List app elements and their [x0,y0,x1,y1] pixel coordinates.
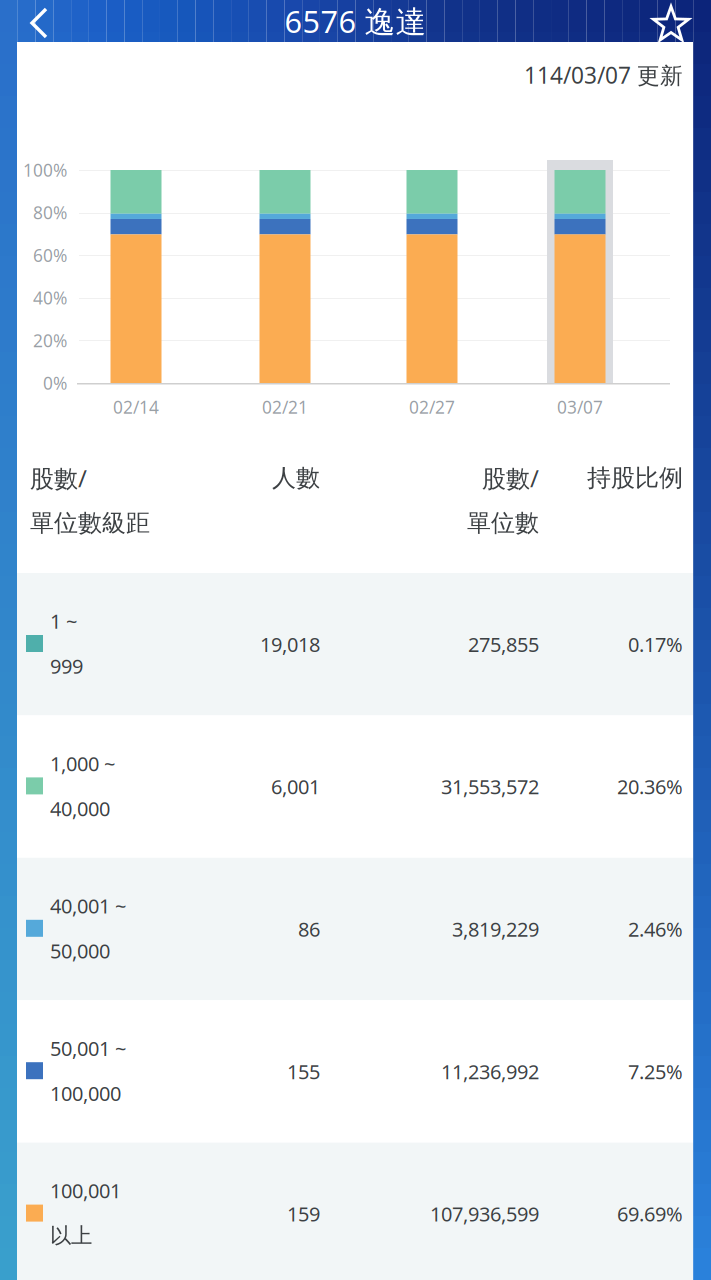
staticText: 19,018 [260,631,320,657]
staticText: 人數 [272,463,320,493]
staticText: 100,001 [50,1177,121,1204]
staticText: 02/27 [409,395,455,418]
staticText: 69.69% [617,1200,683,1227]
staticText: 40% [33,286,67,309]
staticText: 單位數級距 [30,508,150,538]
staticText: 2.46% [628,916,683,942]
button[interactable]: Add to watchlist [644,0,698,42]
staticText: 31,553,572 [441,773,539,800]
button[interactable]: 100,001 [17,1143,693,1280]
staticText: 20% [33,329,67,352]
staticText: 100,000 [50,1080,121,1106]
button[interactable]: Back [9,0,67,42]
staticText: 0% [43,371,67,394]
staticText: 11,236,992 [441,1058,539,1085]
staticText: 03/07 [557,395,603,418]
staticText: 40,000 [50,795,110,822]
staticText: 1 ~ [50,608,77,634]
staticText: 1,000 ~ [50,750,115,777]
staticText: 股數/ [482,462,539,494]
staticText: 單位數 [467,508,539,538]
button[interactable]: 1 ~ [17,573,693,715]
staticText: 6576 逸達 [284,1,426,41]
staticText: 100% [23,158,67,181]
button[interactable]: 50,001 ~ [17,1000,693,1143]
staticText: 50,001 ~ [50,1035,126,1061]
staticText: 40,001 ~ [50,892,126,919]
staticText: 3,819,229 [452,916,539,942]
staticText: 114/03/07 更新 [524,60,683,90]
staticText: 02/21 [262,395,308,418]
button[interactable]: 40,001 ~ [17,858,693,1000]
staticText: 155 [287,1058,320,1085]
staticText: 0.17% [628,631,683,657]
staticText: 60% [33,244,67,267]
staticText: 50,000 [50,937,110,964]
staticText: 持股比例 [587,463,683,493]
staticText: 20.36% [617,773,683,800]
staticText: 6,001 [271,773,320,800]
staticText: 275,855 [468,631,539,657]
staticText: 02/14 [113,395,159,418]
staticText: 7.25% [628,1058,683,1085]
staticText: 80% [33,201,67,224]
staticText: 股數/ [30,462,87,494]
staticText: 159 [287,1200,320,1227]
staticText: 107,936,599 [430,1200,539,1227]
button[interactable]: 1,000 ~ [17,715,693,858]
staticText: 86 [298,916,320,942]
staticText: 999 [50,653,83,679]
staticText: 以上 [50,1222,92,1249]
